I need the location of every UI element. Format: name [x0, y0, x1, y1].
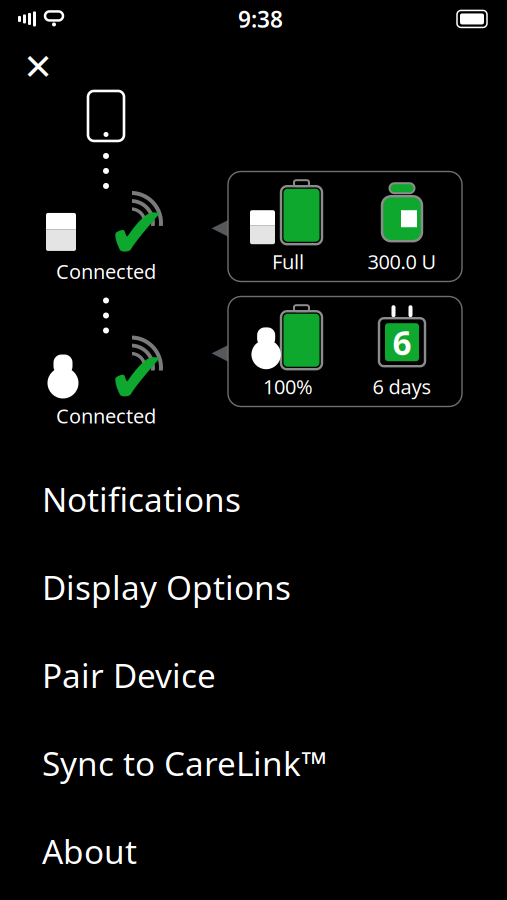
staticText: Full — [272, 248, 304, 275]
staticText: Display Options — [42, 565, 291, 609]
staticText: About — [42, 829, 137, 873]
staticText: ◀ — [211, 339, 228, 364]
button[interactable]: Close — [0, 43, 56, 91]
staticText: 9:38 — [238, 4, 283, 34]
staticText: ✕ — [23, 46, 53, 87]
staticText: Pair Device — [42, 653, 216, 697]
button[interactable]: About — [0, 807, 507, 895]
staticText: ✔ — [107, 337, 167, 418]
staticText: 6 days — [372, 373, 431, 400]
button[interactable]: Display Options — [0, 543, 507, 631]
staticText: Connected — [56, 402, 156, 429]
staticText: 6 — [392, 320, 411, 364]
staticText: 300.0 U — [367, 248, 436, 275]
button[interactable]: Sync to CareLink™ — [0, 719, 507, 807]
button[interactable]: Notifications — [0, 455, 507, 543]
button[interactable]: Pair Device — [0, 631, 507, 719]
staticText: Sync to CareLink™ — [42, 741, 327, 785]
staticText: 100% — [263, 373, 313, 400]
staticText: ◀ — [211, 214, 228, 239]
staticText: Connected — [56, 258, 156, 284]
staticText: Notifications — [42, 477, 241, 521]
staticText: ✔ — [107, 192, 167, 274]
